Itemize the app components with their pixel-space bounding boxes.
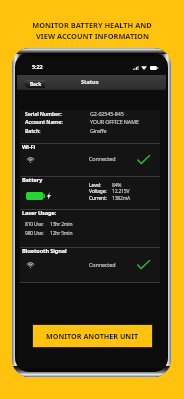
- staticText: Back: [30, 81, 42, 88]
- button[interactable]: Back: [23, 80, 45, 88]
- staticText: 5:22: [32, 63, 43, 70]
- staticText: G2-02545-845: [90, 110, 124, 117]
- staticText: VIEW ACCOUNT INFORMATION: [36, 31, 149, 41]
- staticText: Status: [81, 78, 99, 86]
- staticText: 84%: [112, 182, 122, 189]
- staticText: Voltage:: [89, 188, 107, 195]
- staticText: MONITOR ANOTHER UNIT: [46, 331, 139, 341]
- other: Signal strength: [26, 157, 35, 163]
- staticText: Connected: [89, 261, 116, 268]
- staticText: 13hr 2min: [50, 221, 73, 228]
- staticText: 810 Use:: [25, 221, 44, 228]
- button[interactable]: MONITOR ANOTHER UNIT: [33, 325, 152, 347]
- staticText: Serial Number:: [25, 110, 62, 117]
- staticText: Laser Usage:: [22, 209, 57, 217]
- staticText: Batch:: [25, 127, 41, 134]
- staticText: Current:: [89, 195, 107, 202]
- staticText: Battery: [22, 176, 43, 184]
- staticText: Giraffe: [90, 127, 107, 134]
- staticText: Level:: [89, 182, 102, 189]
- staticText: 980 Use:: [25, 230, 44, 237]
- staticText: YOUR OFFICE NAME: [90, 118, 139, 125]
- staticText: 12hr 5min: [50, 230, 73, 237]
- staticText: Bluetooth Signal: [22, 247, 67, 255]
- staticText: Wi-Fi: [22, 143, 36, 151]
- staticText: 1382mA: [112, 195, 131, 202]
- other: Signal strength: [26, 262, 35, 268]
- staticText: MONITOR BATTERY HEALTH AND: [32, 20, 152, 30]
- staticText: 12.215V: [112, 188, 130, 195]
- staticText: Connected: [89, 155, 116, 162]
- staticText: Account Name:: [25, 118, 63, 125]
